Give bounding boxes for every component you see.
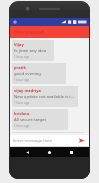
button[interactable]: Discussion bbox=[10, 26, 89, 38]
staticText: 1 hour ago bbox=[14, 101, 30, 105]
staticText: hi jinan any idea bbox=[14, 48, 47, 54]
button[interactable]: Back bbox=[23, 148, 32, 157]
button[interactable]: Vijay bbox=[12, 40, 54, 61]
button[interactable]: pratik bbox=[12, 63, 66, 84]
staticText: Enter message here bbox=[13, 138, 53, 144]
staticText: 1 hour ago bbox=[14, 78, 30, 82]
staticText: krishna bbox=[14, 111, 30, 116]
staticText: New update not available is the logo cha… bbox=[14, 94, 76, 100]
button[interactable]: krishna bbox=[12, 109, 68, 130]
staticText: 1 hour ago bbox=[14, 55, 30, 59]
staticText: 1 hour ago bbox=[14, 124, 30, 128]
staticText: vijay madriya bbox=[14, 88, 41, 93]
button[interactable]: Home bbox=[45, 148, 54, 157]
staticText: All secure target bbox=[14, 117, 46, 123]
staticText: Vijay bbox=[14, 42, 24, 47]
button[interactable]: Send message bbox=[77, 136, 86, 145]
staticText: pratik bbox=[14, 65, 27, 70]
staticText: good evening bbox=[14, 71, 41, 77]
button[interactable]: vijay madriya bbox=[12, 86, 78, 107]
button[interactable]: Enter message here bbox=[13, 138, 77, 144]
button[interactable]: Recent apps bbox=[67, 148, 76, 157]
staticText: Discussion bbox=[14, 28, 45, 36]
